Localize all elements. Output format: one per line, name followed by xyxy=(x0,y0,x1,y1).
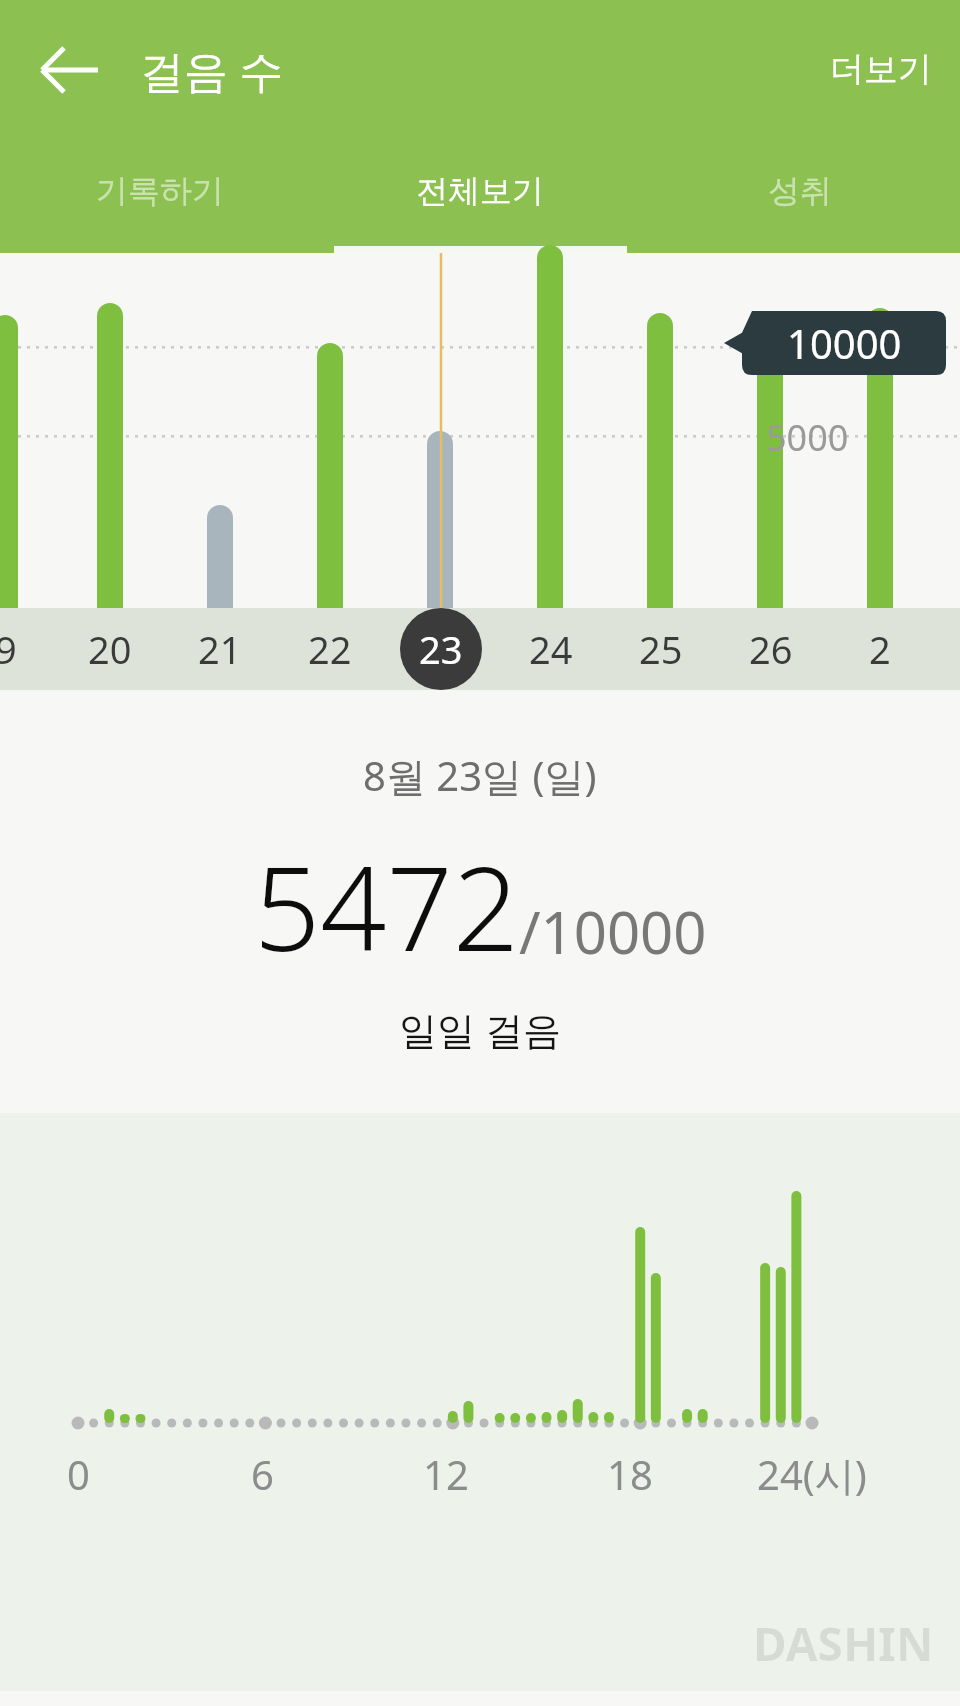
button[interactable]: 2 xyxy=(835,608,925,690)
staticText: 8월 23일 (일) xyxy=(363,748,597,803)
staticText: /10000 xyxy=(519,892,707,971)
staticText: 24(시) xyxy=(757,1447,867,1499)
button[interactable]: 20 xyxy=(65,608,155,690)
button[interactable]: 21 xyxy=(175,608,265,690)
staticText: 전체보기 xyxy=(416,171,544,211)
button[interactable]: 더보기 xyxy=(802,34,960,105)
staticText: 18 xyxy=(607,1447,653,1499)
staticText: DASHIN xyxy=(753,1612,934,1675)
staticText: 10000 xyxy=(787,316,902,370)
staticText: 0 xyxy=(67,1447,90,1499)
button[interactable]: 기록하기 xyxy=(0,145,320,253)
staticText: 2 xyxy=(869,623,891,675)
button[interactable]: 25 xyxy=(616,608,706,690)
button[interactable]: 26 xyxy=(726,608,816,690)
staticText: 더보기 xyxy=(830,48,932,91)
staticText: 24 xyxy=(529,623,573,675)
staticText: 20 xyxy=(88,623,132,675)
button[interactable]: 성취 xyxy=(640,145,960,253)
button[interactable]: 전체보기 xyxy=(320,145,640,253)
staticText: 9 xyxy=(0,623,17,675)
button[interactable]: 24 xyxy=(506,608,596,690)
staticText: 26 xyxy=(749,623,793,675)
button[interactable]: 23 xyxy=(396,608,486,690)
button[interactable]: Back xyxy=(34,34,106,106)
staticText: 기록하기 xyxy=(96,171,224,211)
staticText: 6 xyxy=(251,1447,274,1499)
staticText: 25 xyxy=(639,623,683,675)
staticText: 23 xyxy=(419,623,463,675)
staticText: 21 xyxy=(198,623,242,675)
staticText: 12 xyxy=(423,1447,469,1499)
staticText: 성취 xyxy=(768,171,832,211)
button[interactable]: 9 xyxy=(0,608,51,690)
staticText: 5000 xyxy=(766,413,849,462)
button[interactable]: 22 xyxy=(285,608,375,690)
staticText: 일일 걸음 xyxy=(399,1003,561,1055)
staticText: 22 xyxy=(308,623,352,675)
staticText: 5472 xyxy=(254,827,519,985)
staticText: 걸음 수 xyxy=(140,40,284,100)
